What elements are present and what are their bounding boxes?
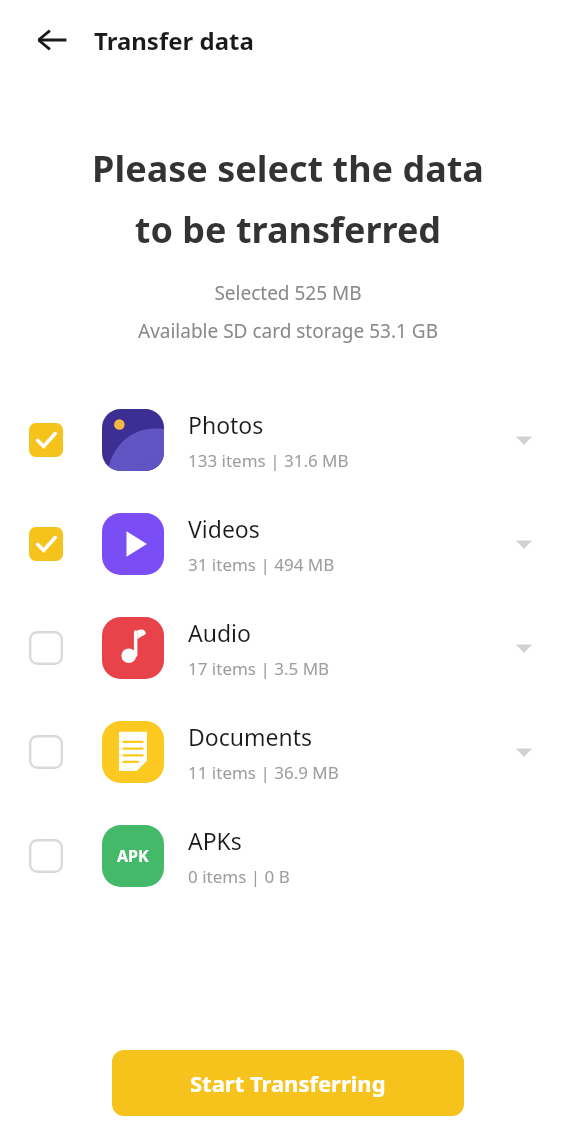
staticText: Start Transferring	[190, 1068, 386, 1098]
staticText: Selected 525 MB	[0, 280, 576, 306]
button[interactable]: Select Documents	[29, 735, 63, 769]
staticText: Available SD card storage 53.1 GB	[0, 318, 576, 344]
staticText: 133 items | 31.6 MB	[188, 449, 349, 472]
staticText: Photos	[188, 409, 264, 440]
staticText: 31 items | 494 MB	[188, 553, 335, 576]
staticText: APK	[117, 845, 149, 867]
button[interactable]: Select APKs	[0, 804, 576, 908]
button[interactable]: Expand Videos	[502, 522, 546, 566]
button[interactable]: Select Photos	[0, 388, 576, 492]
button[interactable]: Select Documents	[0, 700, 576, 804]
staticText: Audio	[188, 617, 251, 648]
button[interactable]: Expand Audio	[502, 626, 546, 670]
staticText: 17 items | 3.5 MB	[188, 657, 330, 680]
button[interactable]: Expand Documents	[502, 730, 546, 774]
button[interactable]: Start Transferring	[112, 1050, 464, 1116]
staticText: Videos	[188, 513, 260, 544]
button[interactable]: Expand Photos	[502, 418, 546, 462]
staticText: to be transferred	[0, 205, 576, 254]
staticText: APKs	[188, 825, 242, 856]
button[interactable]: Select Videos	[0, 492, 576, 596]
staticText: 0 items | 0 B	[188, 865, 290, 888]
staticText: Documents	[188, 721, 312, 752]
staticText: 11 items | 36.9 MB	[188, 761, 339, 784]
button[interactable]: Select Audio	[0, 596, 576, 700]
button[interactable]: Back	[24, 12, 80, 68]
button[interactable]: Select Photos	[29, 423, 63, 457]
button[interactable]: Select Videos	[29, 527, 63, 561]
staticText: Please select the data	[0, 144, 576, 193]
button[interactable]: Select APKs	[29, 839, 63, 873]
staticText: Transfer data	[94, 24, 254, 57]
button[interactable]: Select Audio	[29, 631, 63, 665]
